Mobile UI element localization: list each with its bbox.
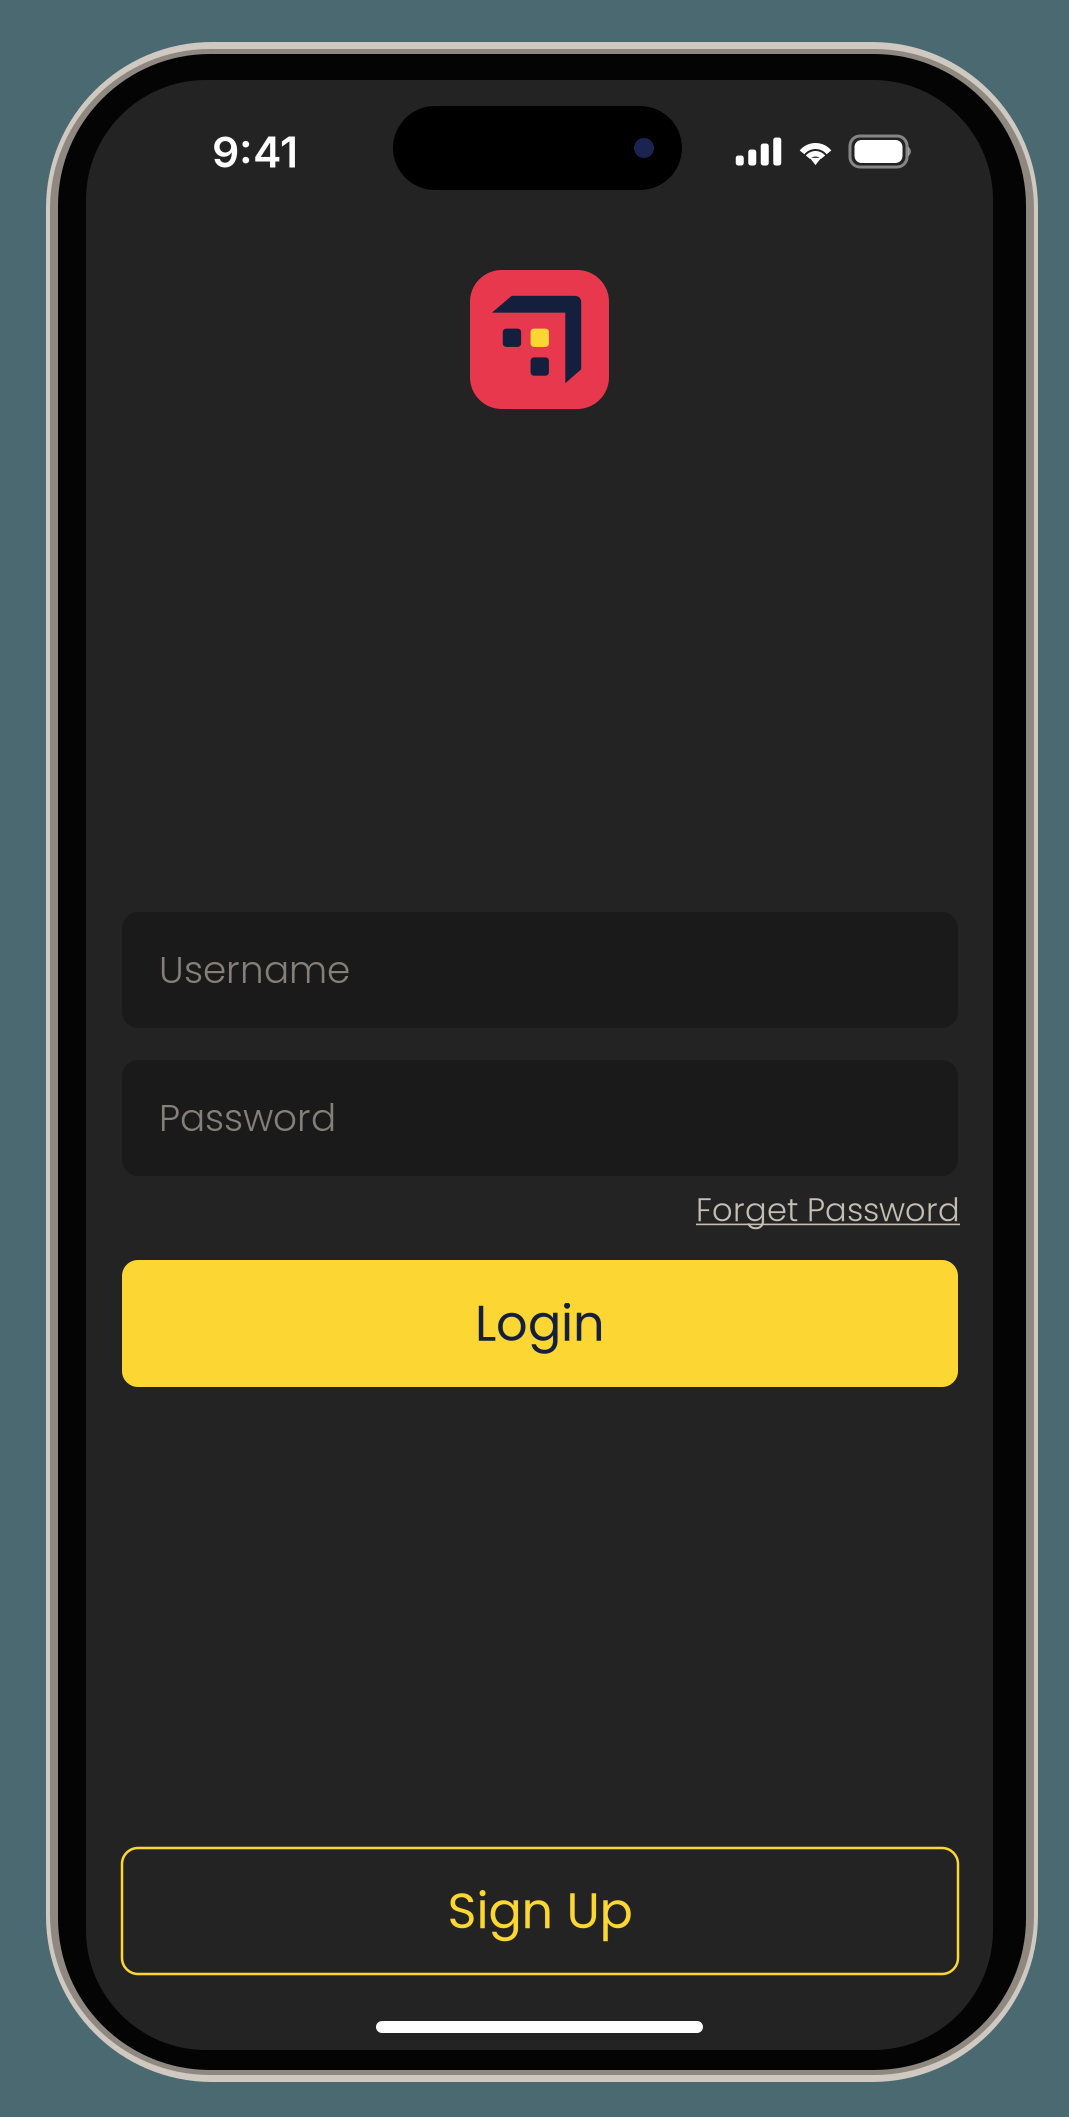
staticText: Password — [159, 1092, 336, 1144]
button[interactable]: Username — [122, 912, 958, 1028]
button[interactable]: Password — [122, 1060, 958, 1176]
staticText: Sign Up — [447, 1876, 632, 1946]
staticText: 9:41 — [212, 126, 298, 178]
button[interactable]: Login — [122, 1260, 958, 1387]
staticText: Username — [159, 944, 350, 996]
button[interactable]: Sign Up — [122, 1848, 958, 1974]
staticText: Login — [475, 1289, 605, 1358]
button[interactable]: Forget Password — [696, 1188, 960, 1232]
staticText: Forget Password — [696, 1188, 960, 1232]
